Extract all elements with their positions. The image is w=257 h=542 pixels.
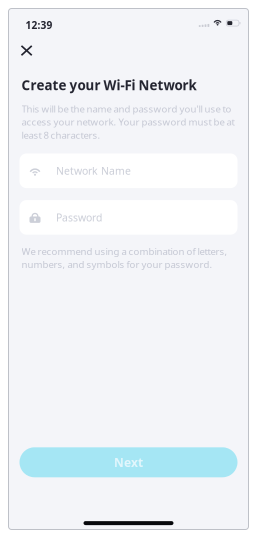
staticText: We recommend using a combination of lett… <box>21 245 227 271</box>
button[interactable]: Next <box>19 447 237 477</box>
staticText: Network Name <box>56 164 131 178</box>
staticText: Password <box>56 210 102 224</box>
staticText: 12:39 <box>25 18 52 32</box>
staticText: Next <box>114 454 143 470</box>
staticText: This will be the name and password you'l… <box>21 102 234 141</box>
button[interactable]: Close <box>16 40 38 61</box>
staticText: Create your Wi-Fi Network <box>21 76 196 94</box>
